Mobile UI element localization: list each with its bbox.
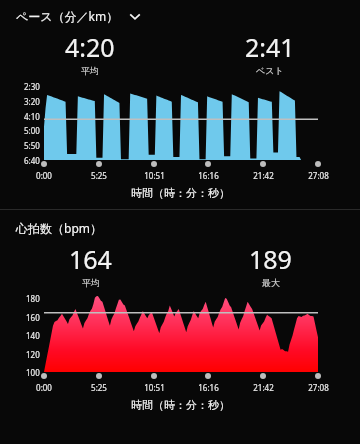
staticText: 10:51 bbox=[144, 170, 165, 181]
staticText: 時間（時：分：秒） bbox=[131, 398, 230, 412]
staticText: 時間（時：分：秒） bbox=[131, 186, 230, 200]
staticText: 180 bbox=[26, 293, 40, 304]
button[interactable]: 心拍数（bpm） bbox=[0, 218, 360, 238]
staticText: 21:42 bbox=[253, 170, 274, 181]
staticText: 160 bbox=[26, 312, 40, 323]
staticText: ベスト bbox=[256, 65, 284, 76]
other: Change metric bbox=[127, 8, 143, 24]
staticText: 27:08 bbox=[308, 382, 329, 393]
staticText: 21:42 bbox=[253, 382, 274, 393]
staticText: 5:25 bbox=[91, 382, 107, 393]
staticText: 2:30 bbox=[24, 81, 40, 92]
staticText: 3:20 bbox=[24, 96, 40, 107]
staticText: 平均 bbox=[82, 277, 100, 288]
staticText: 0:00 bbox=[36, 170, 52, 181]
staticText: 100 bbox=[26, 367, 40, 378]
staticText: 5:50 bbox=[24, 140, 40, 151]
staticText: 16:16 bbox=[198, 382, 219, 393]
staticText: 0:00 bbox=[36, 382, 52, 393]
button[interactable]: ペース（分／km） bbox=[0, 0, 360, 26]
staticText: 2:41 bbox=[245, 30, 295, 64]
staticText: 140 bbox=[26, 330, 40, 341]
staticText: 4:10 bbox=[24, 111, 40, 122]
staticText: 心拍数（bpm） bbox=[16, 220, 102, 236]
staticText: ペース（分／km） bbox=[16, 8, 119, 24]
staticText: 120 bbox=[26, 349, 40, 360]
staticText: 27:08 bbox=[308, 170, 329, 181]
staticText: 5:00 bbox=[24, 125, 40, 136]
staticText: 6:40 bbox=[24, 155, 40, 166]
staticText: 10:51 bbox=[144, 382, 165, 393]
staticText: 4:20 bbox=[65, 30, 115, 64]
staticText: 16:16 bbox=[198, 170, 219, 181]
staticText: 164 bbox=[69, 242, 112, 276]
staticText: 5:25 bbox=[91, 170, 107, 181]
staticText: 最大 bbox=[262, 277, 280, 288]
staticText: 平均 bbox=[81, 65, 99, 76]
staticText: 189 bbox=[249, 242, 292, 276]
